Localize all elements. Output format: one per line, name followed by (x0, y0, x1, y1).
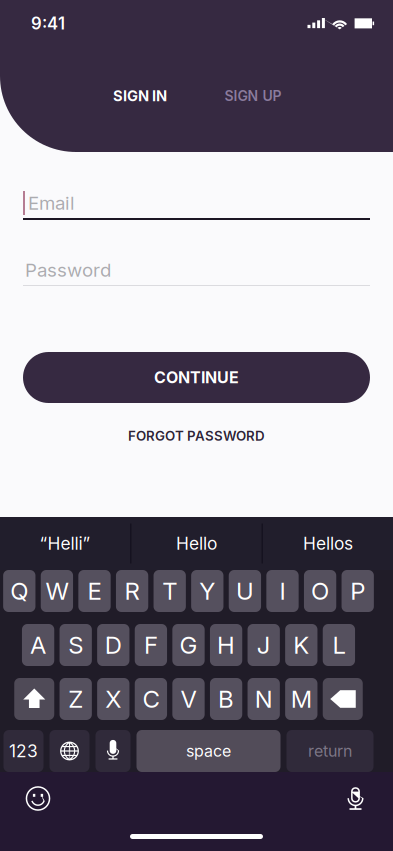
staticText: L (332, 630, 345, 659)
button[interactable]: Z (59, 678, 92, 720)
button[interactable]: E (78, 570, 111, 612)
button[interactable]: F (135, 624, 167, 666)
staticText: P (350, 576, 365, 605)
staticText: S (68, 630, 83, 659)
staticText: Y (199, 576, 215, 605)
button[interactable]: Delete (323, 678, 363, 720)
staticText: Q (10, 576, 28, 605)
staticText: D (105, 630, 122, 659)
staticText: N (255, 684, 273, 713)
staticText: Hellos (303, 533, 353, 554)
staticText: F (144, 630, 158, 659)
staticText: T (162, 576, 177, 605)
button[interactable]: S (59, 624, 92, 666)
button[interactable]: Q (3, 570, 35, 612)
button[interactable]: Hello (131, 523, 262, 563)
staticText: 123 (9, 740, 38, 761)
staticText: SIGN UP (224, 87, 281, 104)
button[interactable]: T (153, 570, 186, 612)
button[interactable]: “Helli” (0, 523, 130, 563)
button[interactable]: L (323, 624, 355, 666)
button[interactable]: N (247, 678, 280, 720)
button[interactable]: space (136, 730, 280, 772)
button[interactable]: Shift (14, 678, 54, 720)
button[interactable]: I (266, 570, 299, 612)
staticText: J (257, 630, 271, 659)
staticText: X (105, 684, 121, 713)
staticText: H (217, 630, 235, 659)
staticText: K (293, 630, 309, 659)
staticText: FORGOT PASSWORD (128, 428, 265, 444)
staticText: SIGN IN (113, 87, 167, 105)
button[interactable]: R (116, 570, 148, 612)
staticText: A (30, 630, 46, 659)
button[interactable]: Y (191, 570, 223, 612)
button[interactable]: U (229, 570, 261, 612)
staticText: V (180, 684, 196, 713)
button[interactable]: X (97, 678, 129, 720)
button[interactable]: P (341, 570, 374, 612)
staticText: I (279, 576, 285, 605)
staticText: Email (28, 192, 75, 214)
staticText: 9:41 (31, 13, 65, 34)
button[interactable]: M (285, 678, 317, 720)
button[interactable]: CONTINUE (23, 352, 370, 403)
staticText: CONTINUE (154, 368, 239, 387)
button[interactable]: Next keyboard (49, 730, 89, 772)
staticText: O (311, 576, 329, 605)
button[interactable]: FORGOT PASSWORD (23, 428, 370, 444)
button[interactable]: B (210, 678, 242, 720)
staticText: “Helli” (39, 533, 90, 554)
button[interactable]: 123 (3, 730, 43, 772)
staticText: G (179, 630, 197, 659)
button[interactable]: SIGN IN (108, 86, 172, 106)
staticText: R (125, 576, 140, 605)
staticText: return (308, 741, 352, 761)
button[interactable]: SIGN UP (221, 86, 285, 106)
staticText: U (236, 576, 254, 605)
staticText: B (218, 684, 234, 713)
button[interactable]: K (285, 624, 317, 666)
button[interactable]: W (41, 570, 73, 612)
button[interactable]: Dictate (345, 785, 366, 812)
button[interactable]: Dictation (95, 730, 130, 772)
button[interactable]: H (210, 624, 242, 666)
staticText: Password (25, 259, 111, 281)
button[interactable]: A (22, 624, 54, 666)
button[interactable]: Hellos (263, 523, 393, 563)
staticText: Z (68, 684, 83, 713)
button[interactable]: J (247, 624, 280, 666)
staticText: Hello (176, 533, 217, 554)
button[interactable]: D (97, 624, 129, 666)
staticText: W (45, 576, 68, 605)
button[interactable]: Emoji (25, 785, 51, 811)
staticText: space (186, 741, 231, 761)
staticText: E (87, 576, 101, 605)
staticText: M (291, 684, 312, 713)
staticText: C (142, 684, 159, 713)
button[interactable]: O (304, 570, 336, 612)
button[interactable]: G (172, 624, 205, 666)
button[interactable]: C (135, 678, 167, 720)
button[interactable]: V (172, 678, 205, 720)
button[interactable]: return (286, 730, 373, 772)
